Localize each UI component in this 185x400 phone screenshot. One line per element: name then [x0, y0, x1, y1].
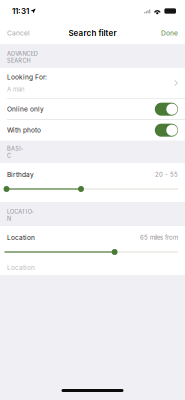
staticText: Location	[7, 233, 35, 241]
staticText: BASIC	[7, 145, 23, 159]
staticText: Looking For:	[7, 73, 47, 81]
button[interactable]: Cancel	[0, 22, 38, 44]
button[interactable]: Done	[153, 22, 185, 44]
staticText: A man	[7, 86, 25, 93]
staticText: Location	[7, 263, 35, 271]
button[interactable]: Online only	[0, 99, 185, 119]
staticText: Search filter	[68, 28, 116, 38]
button[interactable]: Looking For:	[0, 67, 185, 98]
staticText: LOCATION	[7, 208, 34, 222]
staticText: 11:31	[12, 6, 29, 16]
button[interactable]: With photo	[0, 120, 185, 140]
staticText: Online only	[7, 105, 44, 113]
staticText: 65 miles from	[140, 234, 178, 241]
staticText: Done	[161, 29, 178, 37]
staticText: Birthday	[7, 170, 34, 178]
staticText: ADVANCED SEARCH	[7, 50, 38, 64]
staticText: Cancel	[7, 29, 30, 37]
staticText: With photo	[7, 126, 41, 134]
staticText: 20 - 55	[155, 171, 178, 178]
